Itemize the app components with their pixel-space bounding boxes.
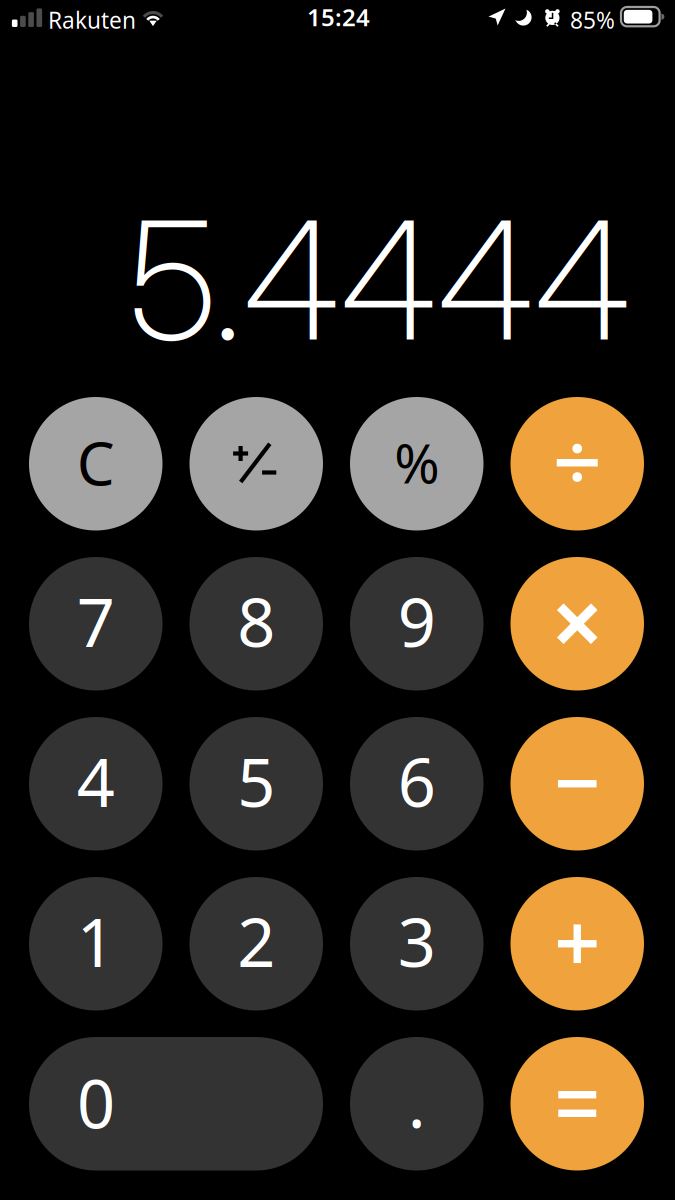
staticText: Rakuten — [48, 5, 136, 35]
staticText: 5 — [237, 737, 275, 825]
staticText: 85% — [570, 5, 615, 35]
staticText: 8 — [237, 577, 275, 665]
button[interactable]: 5 — [189, 717, 323, 850]
button[interactable]: 6 — [350, 717, 483, 850]
button[interactable]: Multiply — [510, 557, 644, 690]
button[interactable]: Add — [510, 877, 644, 1010]
staticText: 6 — [398, 737, 436, 825]
button[interactable]: Subtract — [510, 717, 644, 850]
button[interactable]: Divide — [510, 397, 644, 530]
button[interactable]: . — [350, 1037, 483, 1170]
button[interactable]: 1 — [29, 877, 162, 1010]
staticText: 2 — [237, 897, 275, 985]
staticText: 9 — [398, 577, 436, 665]
staticText: 1 — [77, 897, 115, 985]
staticText: 5.4444 — [129, 181, 631, 379]
staticText: 3 — [398, 897, 436, 985]
staticText: 15:24 — [307, 1, 370, 33]
button[interactable]: 9 — [350, 557, 483, 690]
button[interactable]: Plus minus — [189, 397, 323, 530]
staticText: 7 — [77, 577, 115, 665]
staticText: 0 — [77, 1058, 115, 1147]
button[interactable]: 0 — [29, 1037, 323, 1170]
staticText: 4 — [77, 737, 115, 825]
staticText: . — [408, 1058, 426, 1146]
button[interactable]: 7 — [29, 557, 162, 690]
button[interactable]: 4 — [29, 717, 162, 850]
button[interactable]: % — [350, 397, 483, 530]
button[interactable]: 2 — [189, 877, 323, 1010]
button[interactable]: Equals — [510, 1037, 644, 1170]
button[interactable]: C — [29, 397, 162, 530]
staticText: % — [394, 426, 439, 499]
button[interactable]: 8 — [189, 557, 323, 690]
button[interactable]: 3 — [350, 877, 483, 1010]
staticText: C — [77, 422, 115, 502]
